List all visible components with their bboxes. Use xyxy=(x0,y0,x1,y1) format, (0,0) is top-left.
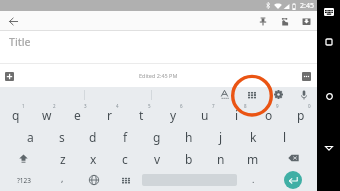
staticText: 0 xyxy=(308,103,311,109)
button[interactable]: t xyxy=(125,102,157,125)
staticText: y xyxy=(170,107,177,123)
staticText: 4 xyxy=(116,103,119,109)
staticText: x xyxy=(90,151,97,167)
staticText: o xyxy=(265,107,273,123)
button[interactable]: Text correction xyxy=(216,87,232,102)
button[interactable]: z xyxy=(47,147,78,169)
button[interactable]: y xyxy=(157,102,189,125)
button[interactable]: h xyxy=(173,125,205,147)
button[interactable]: Recent apps xyxy=(322,35,336,49)
button[interactable]: Enter xyxy=(269,169,317,191)
staticText: 8 xyxy=(244,103,247,109)
staticText: 1 xyxy=(22,103,25,109)
button[interactable]: o xyxy=(253,102,285,125)
button[interactable]: m xyxy=(237,147,269,169)
staticText: 7 xyxy=(212,103,215,109)
staticText: ?123 xyxy=(17,176,31,185)
staticText: e xyxy=(74,107,81,123)
staticText: a xyxy=(27,129,34,145)
button[interactable]: Shift xyxy=(0,147,47,169)
button[interactable]: More options xyxy=(299,69,313,83)
button[interactable]: Home xyxy=(322,89,336,103)
button[interactable]: Title xyxy=(0,31,317,64)
button[interactable]: ?123 xyxy=(0,169,47,191)
button[interactable]: f xyxy=(109,125,141,147)
button[interactable]: k xyxy=(237,125,269,147)
staticText: 3 xyxy=(84,103,87,109)
button[interactable]: Hide keyboard xyxy=(322,5,336,19)
staticText: n xyxy=(217,151,225,167)
button[interactable]: i xyxy=(221,102,253,125)
button[interactable]: Emoji xyxy=(110,169,142,191)
button[interactable]: Pin xyxy=(255,14,270,29)
button[interactable]: g xyxy=(141,125,173,147)
button[interactable]: l xyxy=(269,125,301,147)
button[interactable]: Archive xyxy=(299,14,314,29)
button[interactable]: x xyxy=(78,147,109,169)
staticText: m xyxy=(247,151,259,167)
button[interactable]: n xyxy=(205,147,237,169)
button[interactable]: w xyxy=(31,102,62,125)
staticText: r xyxy=(107,107,112,123)
button[interactable]: , xyxy=(47,169,78,191)
button[interactable]: Back xyxy=(322,141,336,155)
staticText: h xyxy=(185,129,193,145)
staticText: t xyxy=(139,107,144,123)
button[interactable]: v xyxy=(141,147,173,169)
staticText: s xyxy=(59,129,65,145)
button[interactable]: s xyxy=(46,125,77,147)
button[interactable]: Backspace xyxy=(269,147,317,169)
staticText: 6 xyxy=(180,103,183,109)
staticText: d xyxy=(89,129,97,145)
button[interactable]: j xyxy=(205,125,237,147)
button[interactable]: r xyxy=(93,102,125,125)
button[interactable]: Voice input xyxy=(296,87,312,102)
staticText: u xyxy=(201,107,209,123)
staticText: Title xyxy=(9,35,31,49)
button[interactable]: p xyxy=(285,102,317,125)
staticText: z xyxy=(60,151,66,167)
button[interactable]: Navigate up xyxy=(6,14,21,29)
button[interactable]: c xyxy=(109,147,141,169)
staticText: 9 xyxy=(276,103,279,109)
button[interactable]: e xyxy=(62,102,93,125)
button[interactable]: u xyxy=(189,102,221,125)
staticText: . xyxy=(252,173,255,185)
staticText: w xyxy=(42,107,52,123)
button[interactable]: d xyxy=(77,125,109,147)
button[interactable]: b xyxy=(173,147,205,169)
staticText: c xyxy=(122,151,128,167)
staticText: 2:45 xyxy=(300,1,314,11)
staticText: p xyxy=(297,107,305,123)
button[interactable]: Stickers xyxy=(244,87,260,102)
button[interactable]: Settings xyxy=(270,87,286,102)
staticText: , xyxy=(61,172,64,184)
staticText: b xyxy=(185,151,193,167)
staticText: j xyxy=(219,129,223,145)
staticText: Edited 2:45 PM xyxy=(139,72,178,79)
staticText: v xyxy=(154,151,161,167)
button[interactable]: Change language xyxy=(78,169,110,191)
staticText: g xyxy=(153,129,161,145)
staticText: q xyxy=(12,107,20,123)
staticText: 5 xyxy=(148,103,151,109)
button[interactable]: Reminder xyxy=(277,14,292,29)
button[interactable]: a xyxy=(15,125,46,147)
button[interactable]: q xyxy=(0,102,31,125)
staticText: 2 xyxy=(53,103,56,109)
button[interactable]: . xyxy=(237,169,269,191)
staticText: i xyxy=(235,107,239,123)
button[interactable]: Add xyxy=(2,69,16,83)
staticText: l xyxy=(283,129,287,145)
staticText: f xyxy=(123,129,128,145)
staticText: k xyxy=(250,129,257,145)
